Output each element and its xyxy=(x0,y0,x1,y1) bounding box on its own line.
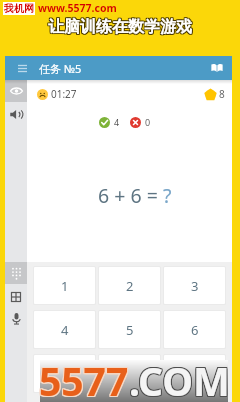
button[interactable]: 4 xyxy=(34,311,95,348)
staticText: .COM xyxy=(130,355,231,402)
staticText: .COM xyxy=(128,355,229,402)
staticText: 2 xyxy=(126,277,134,295)
staticText: 5577 xyxy=(39,353,129,402)
staticText: 5577 xyxy=(40,354,130,402)
staticText: 让脑训练在数学游戏 xyxy=(49,16,193,36)
staticText: 5 xyxy=(126,321,134,339)
staticText: www.5577.com xyxy=(38,1,117,15)
button[interactable]: 8 xyxy=(99,355,160,392)
button[interactable]: 5 xyxy=(99,311,160,348)
staticText: 5577 xyxy=(38,354,128,402)
staticText: 5577 xyxy=(38,355,128,402)
staticText: .COM xyxy=(130,353,231,402)
button[interactable]: Show xyxy=(5,80,27,102)
staticText: 让脑训练在数学游戏 xyxy=(49,18,193,38)
staticText: 0 xyxy=(145,116,151,128)
staticText: .COM xyxy=(129,355,230,402)
button[interactable]: Grid xyxy=(5,286,27,308)
staticText: 让脑训练在数学游戏 xyxy=(48,18,192,38)
staticText: .COM xyxy=(128,354,229,402)
staticText: 5577 xyxy=(39,354,129,402)
staticText: 任务 №5 xyxy=(39,61,82,76)
staticText: ? xyxy=(163,182,172,209)
staticText: 8 xyxy=(126,365,134,383)
button[interactable]: 2 xyxy=(99,267,160,304)
button[interactable]: 3 xyxy=(164,267,225,304)
button[interactable]: Book xyxy=(208,59,226,77)
staticText: 4 xyxy=(114,116,120,128)
button[interactable]: Keypad xyxy=(5,262,27,284)
staticText: 3 xyxy=(191,277,199,295)
staticText: .COM xyxy=(128,353,229,402)
button[interactable]: Microphone xyxy=(5,308,27,330)
staticText: .COM xyxy=(130,354,231,402)
button[interactable]: Volume xyxy=(5,103,27,125)
staticText: 6 + 6 = xyxy=(98,182,163,209)
staticText: 1 xyxy=(61,277,69,295)
staticText: 01:27 xyxy=(51,87,77,101)
staticText: 7 xyxy=(61,365,69,383)
staticText: .COM xyxy=(129,354,230,402)
staticText: 9 xyxy=(191,365,199,383)
button[interactable]: 6 xyxy=(164,311,225,348)
staticText: 6 xyxy=(191,321,199,339)
staticText: 让脑训练在数学游戏 xyxy=(49,17,193,37)
staticText: 让脑训练在数学游戏 xyxy=(48,16,192,36)
staticText: 4 xyxy=(61,321,69,339)
staticText: 我机网 xyxy=(4,2,34,15)
staticText: 5577 xyxy=(40,353,130,402)
staticText: 让脑训练在数学游戏 xyxy=(48,17,192,37)
button[interactable]: 9 xyxy=(164,355,225,392)
button[interactable]: Menu xyxy=(13,59,31,77)
staticText: 5577 xyxy=(38,353,128,402)
staticText: 5577 xyxy=(40,355,130,402)
button[interactable]: 1 xyxy=(34,267,95,304)
staticText: 让脑训练在数学游戏 xyxy=(47,16,191,36)
staticText: 5577 xyxy=(39,355,129,402)
staticText: 8 xyxy=(219,87,225,101)
staticText: 让脑训练在数学游戏 xyxy=(47,18,191,38)
button[interactable]: 7 xyxy=(34,355,95,392)
staticText: .COM xyxy=(129,353,230,402)
staticText: 让脑训练在数学游戏 xyxy=(47,17,191,37)
